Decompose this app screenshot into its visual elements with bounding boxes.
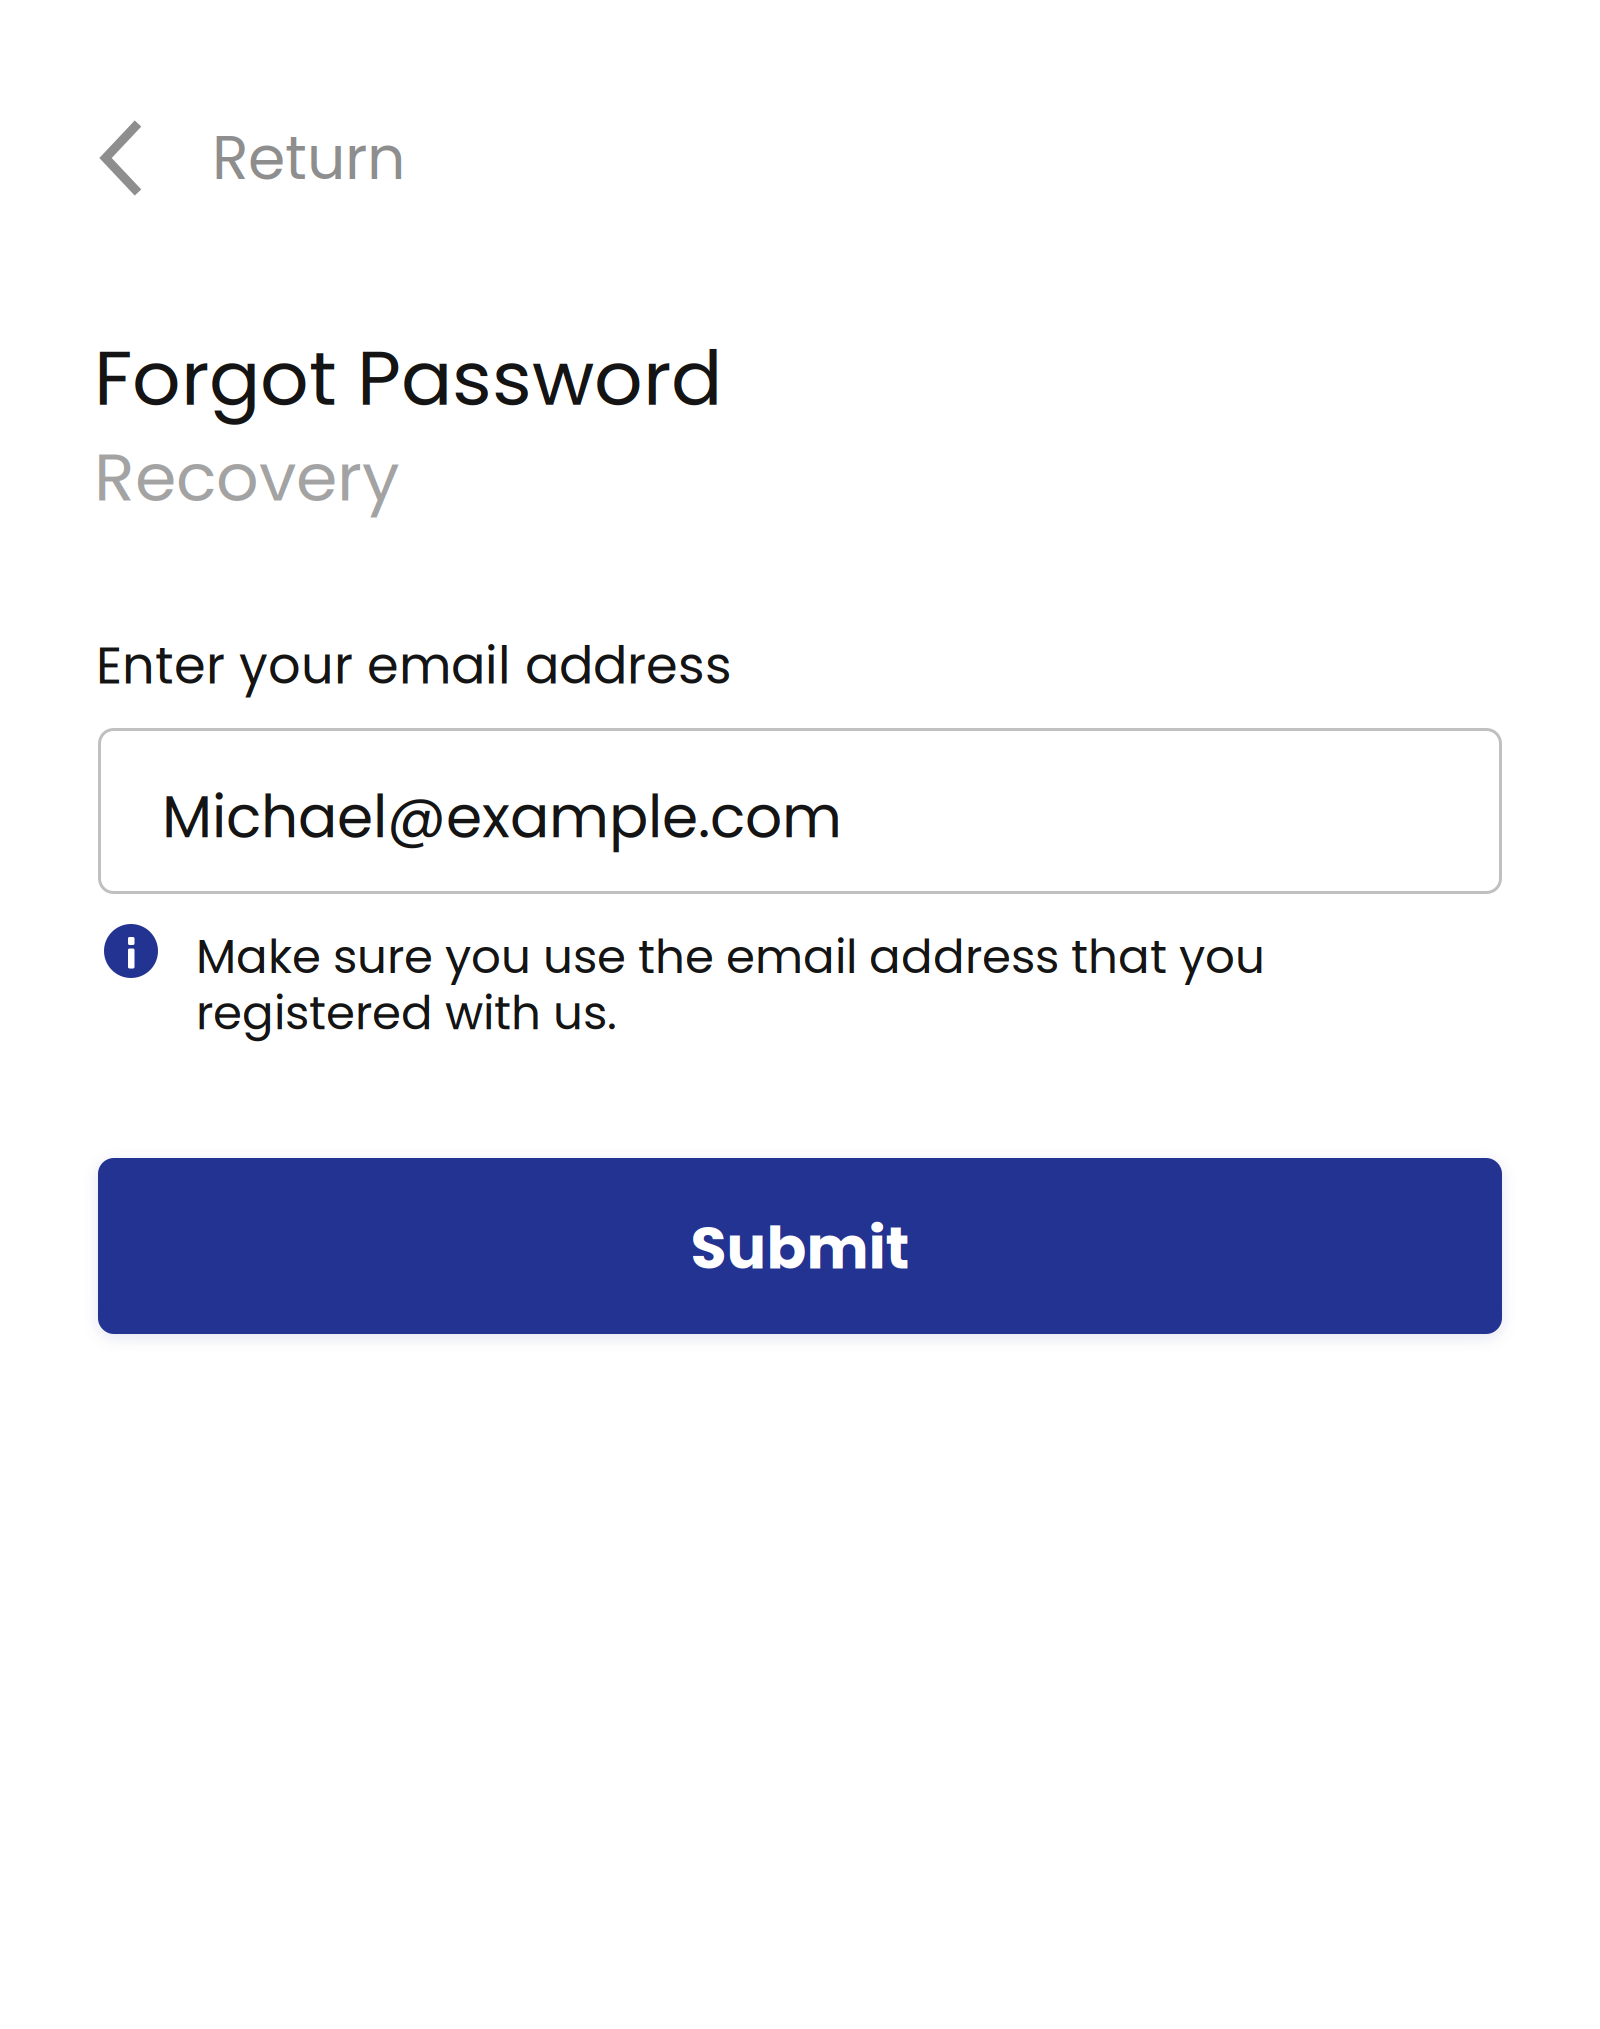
staticText: Submit <box>690 1207 909 1289</box>
staticText: Michael@example.com <box>162 776 842 858</box>
button[interactable]: Submit <box>98 1158 1502 1334</box>
staticText: Enter your email address <box>96 630 732 701</box>
button[interactable]: Return <box>0 103 455 213</box>
staticText: Make sure you use the email address that… <box>196 924 1265 989</box>
staticText: Forgot Password <box>94 325 722 431</box>
staticText: Recovery <box>94 430 400 524</box>
button[interactable]: Michael@example.com <box>98 728 1502 894</box>
staticText: Return <box>212 116 405 200</box>
staticText: registered with us. <box>196 980 617 1046</box>
